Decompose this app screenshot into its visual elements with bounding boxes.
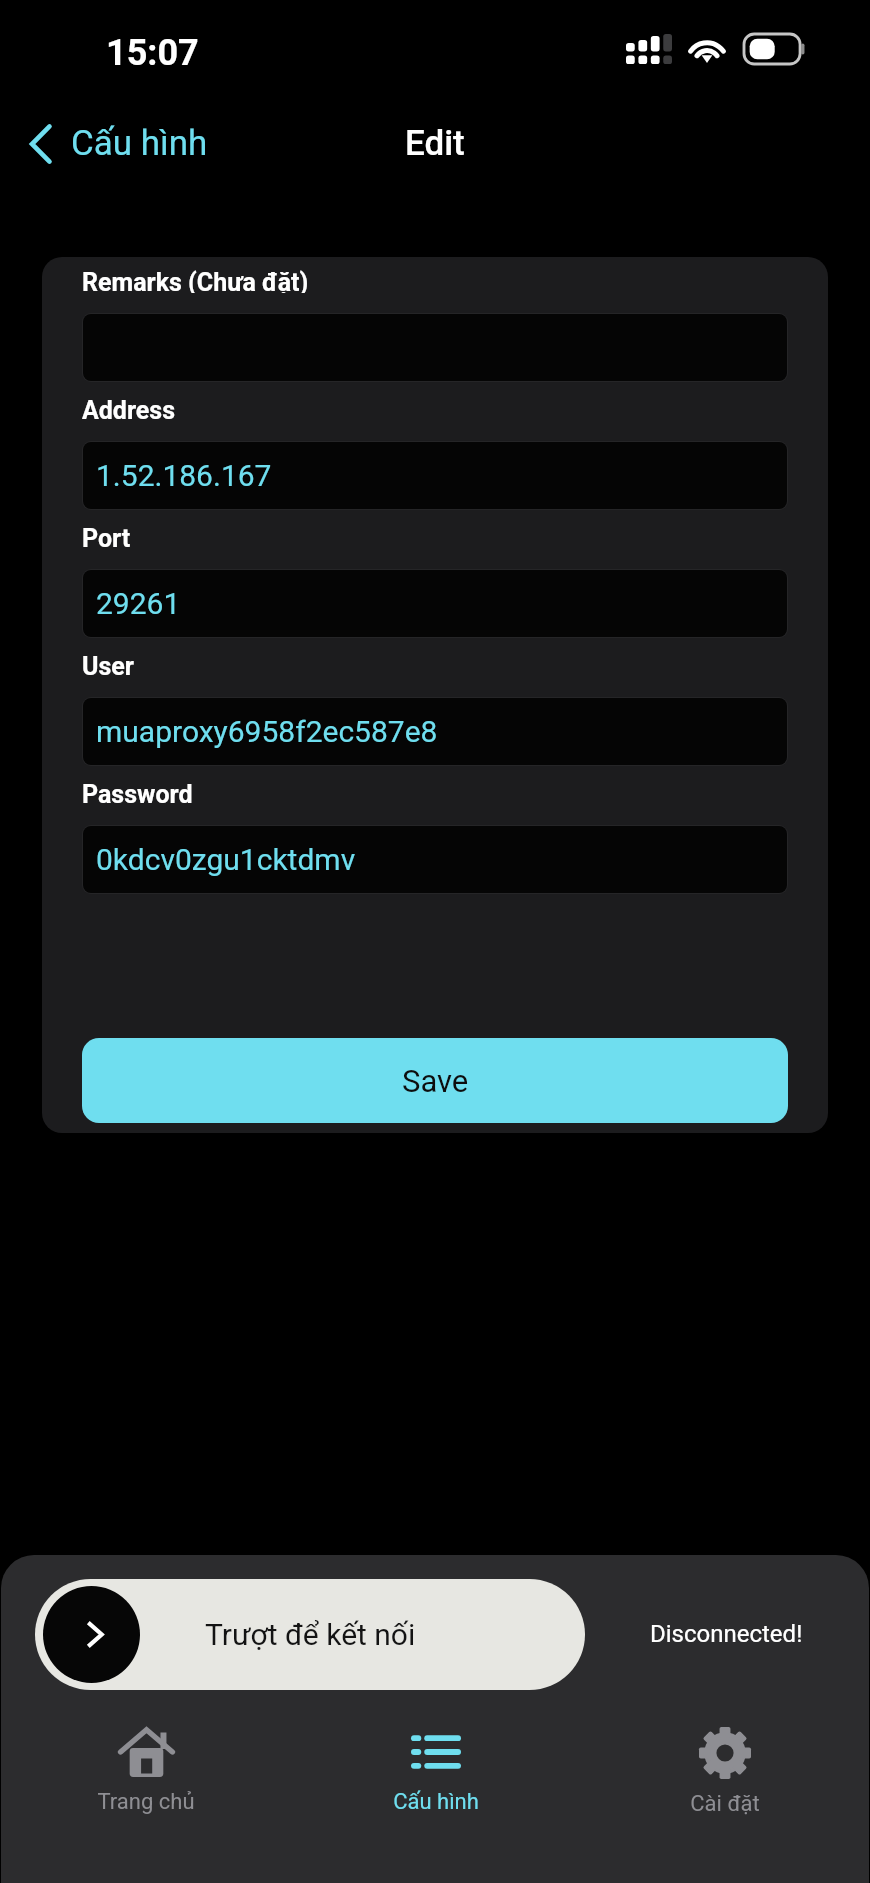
- staticText: User: [82, 652, 134, 677]
- staticText: Trang chủ: [97, 1789, 195, 1815]
- button[interactable]: Cài đặt: [580, 1690, 869, 1883]
- staticText: Address: [82, 396, 176, 421]
- staticText: 1.52.186.167: [96, 458, 272, 493]
- button[interactable]: Save: [82, 1038, 788, 1123]
- staticText: Cấu hình: [71, 123, 208, 164]
- button[interactable]: 1.52.186.167: [83, 442, 787, 509]
- button[interactable]: 0kdcv0zgu1cktdmv: [83, 826, 787, 893]
- staticText: Save: [402, 1063, 469, 1099]
- staticText: 15:07: [106, 32, 199, 74]
- other: Slide to connect: [43, 1586, 140, 1683]
- button[interactable]: Disconnected!: [585, 1578, 835, 1690]
- staticText: Edit: [405, 123, 465, 164]
- staticText: Remarks (Chưa đặt): [82, 268, 309, 293]
- staticText: 29261: [96, 586, 181, 621]
- button[interactable]: 29261: [83, 570, 787, 637]
- button[interactable]: muaproxy6958f2ec587e8: [83, 698, 787, 765]
- staticText: muaproxy6958f2ec587e8: [96, 714, 438, 749]
- button[interactable]: Back to Cấu hình: [0, 115, 224, 172]
- button[interactable]: Cấu hình: [291, 1690, 580, 1883]
- button[interactable]: Trượt để kết nối: [35, 1579, 585, 1690]
- staticText: Port: [82, 524, 131, 549]
- staticText: Cấu hình: [393, 1789, 479, 1815]
- staticText: Password: [82, 780, 193, 805]
- staticText: Trượt để kết nối: [205, 1617, 416, 1652]
- staticText: Disconnected!: [650, 1620, 803, 1648]
- staticText: 0kdcv0zgu1cktdmv: [96, 842, 356, 877]
- staticText: Cài đặt: [690, 1791, 760, 1817]
- button[interactable]: Trang chủ: [1, 1690, 291, 1883]
